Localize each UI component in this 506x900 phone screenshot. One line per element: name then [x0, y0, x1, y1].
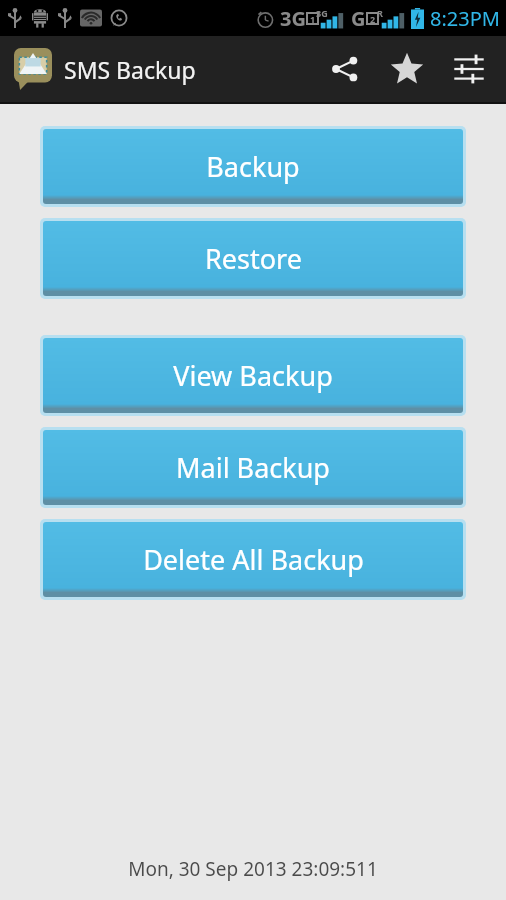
button[interactable]: Share	[314, 37, 376, 101]
staticText: 3G	[316, 7, 328, 19]
button[interactable]: Favorite	[376, 37, 438, 101]
staticText: Backup	[206, 148, 300, 185]
staticText: R	[377, 7, 383, 19]
staticText: Delete All Backup	[143, 541, 364, 578]
button[interactable]: View Backup	[40, 335, 466, 416]
staticText: Restore	[205, 240, 302, 277]
staticText: Mon, 30 Sep 2013 23:09:511	[0, 856, 506, 882]
staticText: 2	[370, 13, 376, 25]
staticText: View Backup	[173, 357, 333, 394]
staticText: SMS Backup	[64, 54, 196, 85]
staticText: G	[351, 5, 366, 32]
staticText: 8:23PM	[430, 5, 500, 32]
staticText: 1	[310, 13, 316, 25]
button[interactable]: Mail Backup	[40, 427, 466, 508]
button[interactable]: Restore	[40, 218, 466, 299]
staticText: 3G	[280, 5, 306, 32]
button[interactable]: Settings	[438, 37, 500, 101]
staticText: Mail Backup	[176, 449, 330, 486]
button[interactable]: Backup	[40, 126, 466, 207]
button[interactable]: Delete All Backup	[40, 519, 466, 600]
